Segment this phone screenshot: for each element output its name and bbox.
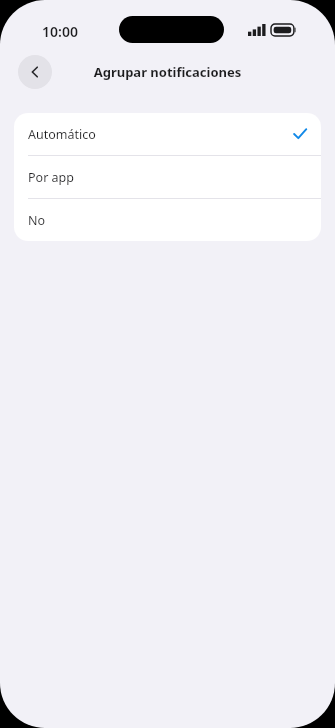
staticText: 10:00 bbox=[42, 22, 78, 41]
staticText: Agrupar notificaciones bbox=[0, 63, 335, 81]
button[interactable]: No bbox=[14, 199, 321, 241]
staticText: No bbox=[28, 212, 46, 229]
button[interactable]: Por app bbox=[14, 156, 321, 198]
staticText: Automático bbox=[28, 126, 96, 143]
button[interactable]: Automático bbox=[14, 113, 321, 155]
staticText: Por app bbox=[28, 169, 74, 186]
button[interactable]: Back bbox=[18, 55, 52, 89]
